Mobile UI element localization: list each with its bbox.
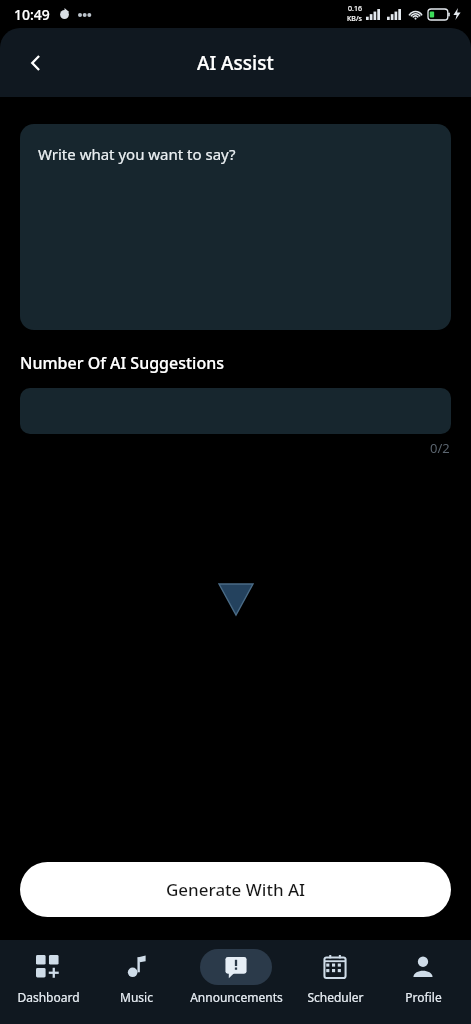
staticText: Number Of AI Suggestions xyxy=(20,352,225,374)
button[interactable]: Dashboard xyxy=(8,949,88,1005)
button[interactable]: Back xyxy=(14,41,58,85)
button[interactable]: Generate With AI xyxy=(20,862,451,917)
staticText: Generate With AI xyxy=(166,878,306,901)
staticText: Scheduler xyxy=(307,989,364,1005)
staticText: Dashboard xyxy=(17,989,80,1005)
staticText: 0.16 xyxy=(348,4,362,14)
button[interactable]: Write what you want to say? xyxy=(20,124,451,330)
staticText: Write what you want to say? xyxy=(38,144,236,164)
button[interactable]: Profile xyxy=(383,949,463,1005)
button[interactable] xyxy=(20,388,451,434)
staticText: KB/s xyxy=(347,14,362,24)
button[interactable]: Music xyxy=(96,949,176,1005)
staticText: Profile xyxy=(405,989,442,1005)
button[interactable]: Scheduler xyxy=(295,949,375,1005)
staticText: 0/2 xyxy=(430,439,450,457)
staticText: 10:49 xyxy=(14,5,50,24)
staticText: AI Assist xyxy=(197,50,274,76)
button[interactable]: Announcements xyxy=(184,949,288,1005)
staticText: Music xyxy=(120,989,153,1005)
staticText: Announcements xyxy=(190,989,283,1005)
